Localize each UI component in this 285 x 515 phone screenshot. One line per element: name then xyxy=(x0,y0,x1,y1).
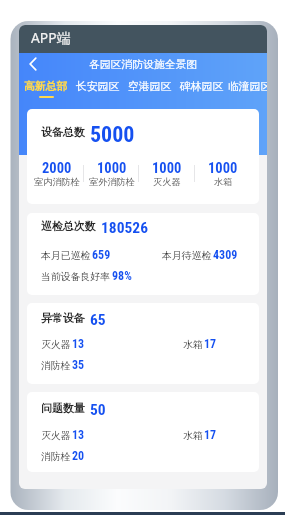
staticText: 室外消防栓 xyxy=(89,176,135,188)
staticText: 4309 xyxy=(213,248,238,262)
staticText: 碑林园区 xyxy=(180,80,224,94)
staticText: 本月待巡检 xyxy=(162,249,212,261)
button[interactable]: 碑林园区 xyxy=(176,80,228,96)
button[interactable]: 长安园区 xyxy=(72,80,124,96)
staticText: 消防栓 xyxy=(41,450,71,462)
staticText: 临潼园区 xyxy=(228,80,267,94)
button[interactable]: 问题数量 xyxy=(27,392,259,472)
staticText: 659 xyxy=(92,248,111,262)
staticText: 灭火器 xyxy=(41,429,71,441)
staticText: 室内消防栓 xyxy=(34,176,80,188)
staticText: 各园区消防设施全景图 xyxy=(89,58,197,72)
staticText: 灭火器 xyxy=(41,338,71,350)
button[interactable]: 巡检总次数 xyxy=(27,213,259,295)
staticText: 65 xyxy=(90,311,106,329)
staticText: 17 xyxy=(204,337,217,351)
button[interactable]: 设备总数 xyxy=(27,109,259,204)
staticText: 灭火器 xyxy=(153,176,181,188)
button[interactable]: 临潼园区 xyxy=(228,80,267,96)
staticText: 长安园区 xyxy=(76,80,120,94)
staticText: 水箱 xyxy=(183,429,203,441)
staticText: 1000 xyxy=(152,160,182,177)
staticText: 消防栓 xyxy=(41,359,71,371)
button[interactable]: Back xyxy=(20,51,46,77)
staticText: 巡检总次数 xyxy=(41,220,96,234)
button[interactable]: 高新总部 xyxy=(20,80,72,98)
staticText: 水箱 xyxy=(183,338,203,350)
staticText: 水箱 xyxy=(214,176,233,188)
staticText: APP端 xyxy=(31,28,71,47)
staticText: 13 xyxy=(72,428,85,442)
staticText: 50 xyxy=(90,401,106,419)
staticText: 设备总数 xyxy=(41,126,85,140)
staticText: 空港园区 xyxy=(128,80,172,94)
staticText: 20 xyxy=(72,449,85,463)
staticText: 1000 xyxy=(208,160,238,177)
staticText: 本月已巡检 xyxy=(41,249,91,261)
staticText: 1000 xyxy=(97,160,127,177)
button[interactable]: 异常设备 xyxy=(27,303,259,384)
staticText: 异常设备 xyxy=(41,312,85,326)
staticText: 13 xyxy=(72,337,85,351)
staticText: 高新总部 xyxy=(24,80,68,94)
staticText: 180526 xyxy=(101,219,148,237)
staticText: 17 xyxy=(204,428,217,442)
staticText: 当前设备良好率 xyxy=(41,270,111,282)
staticText: 问题数量 xyxy=(41,402,85,416)
staticText: 5000 xyxy=(90,122,135,148)
button[interactable]: 空港园区 xyxy=(124,80,176,96)
staticText: 2000 xyxy=(42,160,72,177)
staticText: 98% xyxy=(112,269,132,283)
staticText: 35 xyxy=(72,358,85,372)
